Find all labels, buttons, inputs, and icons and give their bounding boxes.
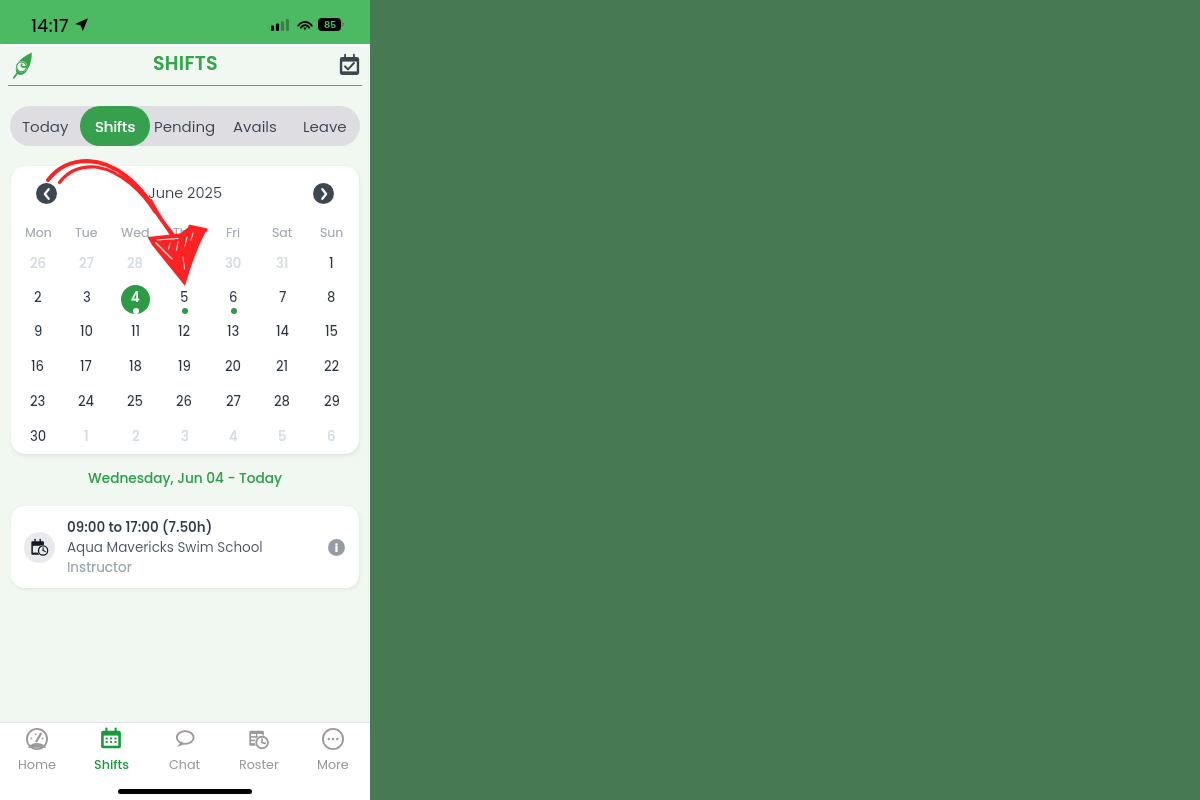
button[interactable]: 24 bbox=[62, 382, 111, 417]
staticText: Wed bbox=[121, 224, 150, 241]
button[interactable]: 23 bbox=[14, 382, 62, 417]
button[interactable]: 8 bbox=[307, 279, 356, 313]
staticText: Shifts bbox=[95, 116, 136, 137]
button[interactable]: 2 bbox=[14, 279, 62, 313]
button[interactable]: Leave bbox=[290, 106, 360, 146]
button[interactable]: Home bbox=[0, 723, 74, 778]
staticText: 21 bbox=[276, 357, 289, 375]
staticText: 22 bbox=[324, 357, 340, 375]
button[interactable]: 13 bbox=[209, 313, 258, 347]
staticText: Shifts bbox=[94, 756, 129, 774]
button[interactable]: 09:00 to 17:00 (7.50h) bbox=[11, 506, 359, 588]
staticText: Home bbox=[18, 756, 56, 774]
button[interactable]: 5 bbox=[258, 417, 307, 452]
button[interactable]: 31 bbox=[258, 245, 307, 279]
button[interactable]: 21 bbox=[258, 347, 307, 382]
staticText: Instructor bbox=[67, 558, 132, 577]
staticText: Fri bbox=[226, 224, 241, 241]
button[interactable]: 16 bbox=[14, 347, 62, 382]
button[interactable]: 27 bbox=[209, 382, 258, 417]
button[interactable]: 2 bbox=[111, 417, 160, 452]
button[interactable]: 11 bbox=[111, 313, 160, 347]
staticText: Sun bbox=[320, 224, 344, 241]
staticText: Leave bbox=[303, 116, 347, 137]
staticText: 16 bbox=[31, 357, 45, 375]
button[interactable]: 22 bbox=[307, 347, 356, 382]
staticText: 30 bbox=[30, 427, 47, 445]
button[interactable]: 28 bbox=[258, 382, 307, 417]
staticText: 14:17 bbox=[31, 14, 69, 39]
button[interactable]: 3 bbox=[160, 417, 209, 452]
button[interactable]: Previous month bbox=[36, 183, 57, 204]
button[interactable]: 28 bbox=[111, 245, 160, 279]
button[interactable]: 26 bbox=[160, 382, 209, 417]
staticText: 5 bbox=[180, 288, 189, 306]
staticText: 6 bbox=[229, 288, 238, 306]
staticText: 4 bbox=[229, 427, 238, 445]
button[interactable]: 29 bbox=[307, 382, 356, 417]
button[interactable]: 1 bbox=[307, 245, 356, 279]
button[interactable]: 9 bbox=[14, 313, 62, 347]
button[interactable]: 4 bbox=[111, 279, 160, 313]
button[interactable]: 5 bbox=[160, 279, 209, 313]
button[interactable]: 3 bbox=[62, 279, 111, 313]
button[interactable]: 29 bbox=[160, 245, 209, 279]
button[interactable]: Pending bbox=[150, 106, 220, 146]
button[interactable]: 20 bbox=[209, 347, 258, 382]
button[interactable]: 15 bbox=[307, 313, 356, 347]
staticText: 3 bbox=[83, 288, 91, 306]
button[interactable]: 6 bbox=[209, 279, 258, 313]
staticText: 24 bbox=[78, 392, 95, 410]
staticText: 1 bbox=[329, 254, 334, 272]
staticText: Tue bbox=[75, 224, 98, 241]
staticText: 1 bbox=[84, 427, 89, 445]
button[interactable]: Today bbox=[10, 106, 80, 146]
button[interactable]: 18 bbox=[111, 347, 160, 382]
button[interactable]: 19 bbox=[160, 347, 209, 382]
staticText: 12 bbox=[178, 322, 191, 340]
button[interactable]: 4 bbox=[209, 417, 258, 452]
staticText: 85 bbox=[324, 18, 337, 31]
button[interactable]: 7 bbox=[258, 279, 307, 313]
button[interactable]: More bbox=[296, 723, 370, 778]
button[interactable]: 6 bbox=[307, 417, 356, 452]
staticText: 6 bbox=[327, 427, 336, 445]
button[interactable]: 30 bbox=[209, 245, 258, 279]
button[interactable]: Avails bbox=[220, 106, 290, 146]
staticText: 9 bbox=[34, 322, 43, 340]
staticText: 27 bbox=[226, 392, 241, 410]
button[interactable]: 17 bbox=[62, 347, 111, 382]
button[interactable]: Shift details bbox=[328, 539, 345, 556]
button[interactable]: Open availability calendar bbox=[339, 54, 360, 76]
button[interactable]: Shifts bbox=[80, 106, 150, 146]
staticText: 20 bbox=[225, 357, 242, 375]
staticText: 3 bbox=[181, 427, 189, 445]
staticText: 2 bbox=[132, 427, 140, 445]
staticText: 19 bbox=[178, 357, 191, 375]
button[interactable]: 27 bbox=[62, 245, 111, 279]
staticText: 25 bbox=[127, 392, 144, 410]
button[interactable]: Roster bbox=[222, 723, 296, 778]
button[interactable]: 12 bbox=[160, 313, 209, 347]
staticText: 26 bbox=[176, 392, 193, 410]
staticText: i bbox=[335, 541, 338, 555]
staticText: Thu bbox=[173, 224, 196, 241]
button[interactable]: 30 bbox=[14, 417, 62, 452]
staticText: 13 bbox=[227, 322, 240, 340]
staticText: 26 bbox=[30, 254, 47, 272]
button[interactable]: Shifts bbox=[74, 723, 148, 778]
button[interactable]: 26 bbox=[14, 245, 62, 279]
staticText: 09:00 to 17:00 (7.50h) bbox=[67, 518, 213, 537]
button[interactable]: Open menu bbox=[13, 52, 32, 78]
button[interactable]: Next month bbox=[313, 183, 334, 204]
button[interactable]: 14 bbox=[258, 313, 307, 347]
button[interactable]: 1 bbox=[62, 417, 111, 452]
staticText: 7 bbox=[279, 288, 287, 306]
staticText: 23 bbox=[30, 392, 46, 410]
staticText: Mon bbox=[25, 224, 52, 241]
staticText: 8 bbox=[327, 288, 336, 306]
button[interactable]: Chat bbox=[148, 723, 222, 778]
button[interactable]: 25 bbox=[111, 382, 160, 417]
staticText: More bbox=[317, 756, 349, 774]
button[interactable]: 10 bbox=[62, 313, 111, 347]
